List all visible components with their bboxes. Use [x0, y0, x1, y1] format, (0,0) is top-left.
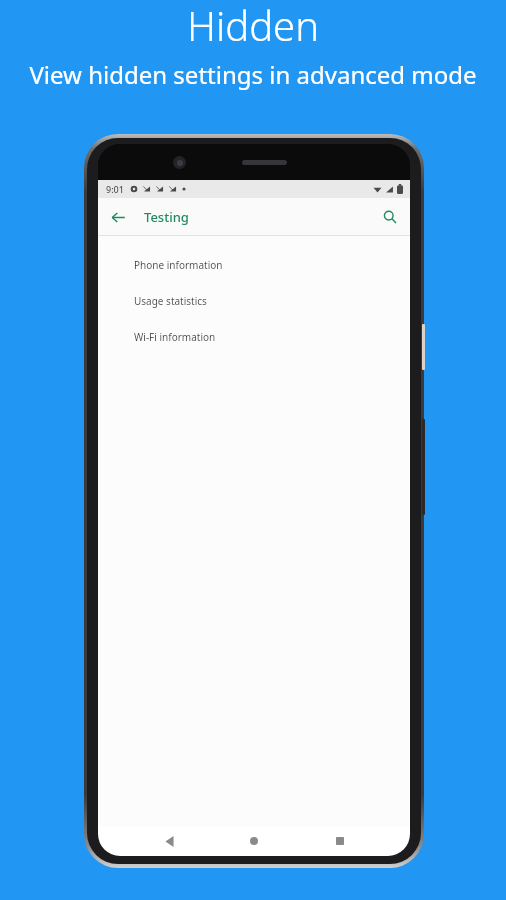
staticText: View hidden settings in advanced mode	[29, 58, 477, 91]
staticText: Wi-Fi information	[134, 330, 216, 344]
staticText: Usage statistics	[134, 294, 207, 308]
staticText: 9:01	[106, 183, 124, 195]
staticText: Hidden	[187, 0, 319, 52]
staticText: Testing	[144, 208, 189, 226]
button[interactable]: Wi-Fi information	[98, 319, 410, 355]
button[interactable]: Usage statistics	[98, 283, 410, 319]
button[interactable]: Back	[102, 201, 134, 233]
button[interactable]: Home	[239, 826, 269, 856]
button[interactable]: Recent apps	[325, 826, 355, 856]
staticText: Phone information	[134, 258, 223, 272]
button[interactable]: Search	[375, 202, 405, 232]
button[interactable]: Phone information	[98, 247, 410, 283]
button[interactable]: Back	[154, 826, 184, 856]
